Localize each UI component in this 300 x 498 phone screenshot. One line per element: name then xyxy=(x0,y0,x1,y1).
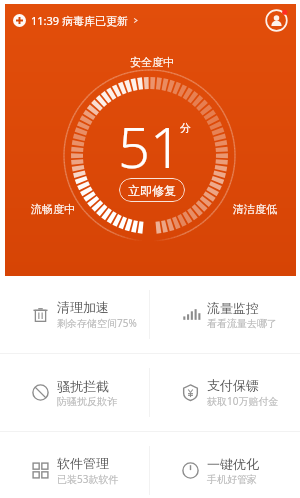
staticText: 11:39 病毒库已更新 xyxy=(31,13,128,28)
staticText: 看看流量去哪了 xyxy=(207,317,277,330)
staticText: 一键优化 xyxy=(207,456,259,472)
staticText: 获取10万赔付金 xyxy=(207,394,279,408)
staticText: 分 xyxy=(180,121,191,135)
staticText: 立即修复 xyxy=(128,183,176,198)
staticText: 手机好管家 xyxy=(207,473,257,486)
button[interactable]: 立即修复 xyxy=(119,178,185,202)
button[interactable]: Account xyxy=(263,7,290,34)
button[interactable]: 流量监控 xyxy=(150,276,300,353)
staticText: 流量监控 xyxy=(207,300,259,316)
staticText: 已装53款软件 xyxy=(57,472,119,486)
staticText: 支付保镖 xyxy=(207,377,259,393)
staticText: 安全度中 xyxy=(130,55,174,69)
staticText: 清理加速 xyxy=(57,299,109,315)
button[interactable]: 支付保镖 xyxy=(150,354,300,431)
button[interactable]: 11:39 病毒库已更新 xyxy=(9,9,143,32)
staticText: 清洁度低 xyxy=(233,202,277,216)
button[interactable]: 软件管理 xyxy=(0,432,149,498)
button[interactable]: 骚扰拦截 xyxy=(0,354,149,431)
staticText: 防骚扰反欺诈 xyxy=(57,395,117,408)
button[interactable]: 清理加速 xyxy=(0,276,149,353)
staticText: 骚扰拦截 xyxy=(57,378,109,394)
staticText: 剩余存储空间75% xyxy=(57,316,137,330)
staticText: 51 xyxy=(118,108,182,184)
staticText: 软件管理 xyxy=(57,455,109,471)
button[interactable]: 一键优化 xyxy=(150,432,300,498)
staticText: 流畅度中 xyxy=(31,202,75,216)
